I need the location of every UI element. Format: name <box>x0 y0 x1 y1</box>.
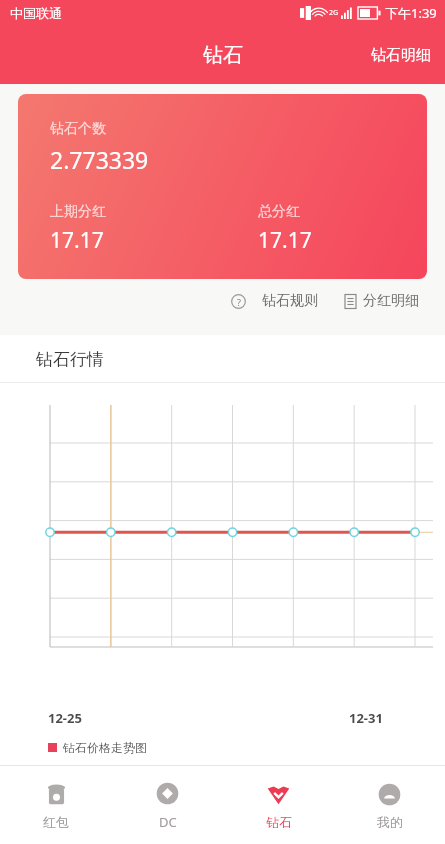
button[interactable]: ? <box>225 286 324 316</box>
staticText: 我的 <box>377 814 403 830</box>
staticText: 上期分红 <box>50 203 106 221</box>
button[interactable]: 钻石明细 <box>357 34 445 77</box>
button[interactable]: 我的 <box>334 766 445 844</box>
button[interactable]: 钻石 <box>223 766 334 844</box>
staticText: 钻石个数 <box>50 120 106 138</box>
staticText: 12-31 <box>349 709 383 727</box>
staticText: 2G <box>329 8 339 18</box>
staticText: 2.773339 <box>50 144 149 175</box>
staticText: 下午1:39 <box>385 4 437 22</box>
staticText: 17.17 <box>258 226 312 255</box>
staticText: 钻石 <box>266 814 292 830</box>
staticText: 12-25 <box>48 709 82 727</box>
staticText: DC <box>159 813 177 831</box>
staticText: 钻石价格走势图 <box>63 740 147 755</box>
staticText: 钻石规则 <box>262 292 318 310</box>
staticText: ? <box>237 296 241 308</box>
staticText: 红包 <box>43 814 69 830</box>
staticText: 钻石明细 <box>371 46 431 65</box>
button[interactable]: 钻石个数 <box>18 94 427 279</box>
button[interactable]: 红包 <box>0 766 112 844</box>
button[interactable]: DC <box>112 766 223 844</box>
button[interactable]: 分红明细 <box>338 286 425 316</box>
staticText: 钻石行情 <box>36 349 104 370</box>
staticText: 钻石 <box>203 43 243 68</box>
staticText: 分红明细 <box>363 292 419 310</box>
staticText: 17.17 <box>50 226 104 255</box>
staticText: 总分红 <box>258 203 300 221</box>
staticText: 中国联通 <box>10 5 62 21</box>
